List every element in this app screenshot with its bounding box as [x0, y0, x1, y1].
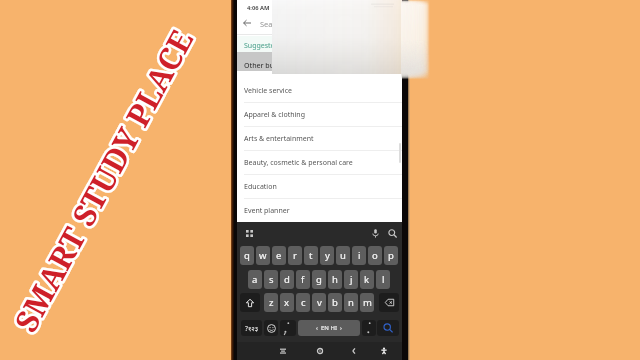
staticText: j	[350, 273, 353, 286]
button[interactable]: b	[328, 293, 342, 312]
staticText: p	[388, 249, 394, 262]
staticText: m	[363, 296, 372, 309]
button[interactable]: d	[280, 270, 294, 289]
button[interactable]: Vehicle service	[237, 78, 402, 102]
button[interactable]: a	[248, 270, 262, 289]
button[interactable]: q	[240, 246, 254, 265]
staticText: y	[325, 249, 330, 262]
button[interactable]: i	[352, 246, 366, 265]
button[interactable]: s	[264, 270, 278, 289]
button[interactable]: k	[360, 270, 374, 289]
button[interactable]: Home	[315, 346, 325, 356]
button[interactable]: c	[296, 293, 310, 312]
staticText: w	[259, 249, 267, 262]
staticText: Beauty, cosmetic & personal care	[244, 158, 353, 168]
button[interactable]: v	[312, 293, 326, 312]
button[interactable]	[362, 320, 376, 336]
button[interactable]: t	[304, 246, 318, 265]
button[interactable]: h	[328, 270, 342, 289]
staticText: v	[317, 296, 322, 309]
staticText: ‹ EN HI ›	[316, 324, 342, 332]
staticText: b	[332, 296, 338, 309]
button[interactable]: x	[280, 293, 294, 312]
staticText: g	[316, 273, 322, 286]
button[interactable]: w	[256, 246, 270, 265]
button[interactable]: o	[368, 246, 382, 265]
button[interactable]: ‹ EN HI ›	[298, 320, 360, 336]
button[interactable]: Arts & entertainment	[237, 126, 402, 150]
button[interactable]	[280, 320, 296, 336]
button[interactable]: j	[344, 270, 358, 289]
staticText: 4:06 AM	[247, 4, 270, 12]
button[interactable]: ?१२३	[241, 320, 262, 336]
staticText: r	[293, 249, 297, 262]
staticText: l	[382, 273, 385, 286]
button[interactable]: Other business	[237, 52, 402, 71]
staticText: u	[340, 249, 346, 262]
button[interactable]: Keyboard modes	[244, 228, 255, 239]
staticText: i	[358, 249, 361, 262]
staticText: Search	[260, 19, 284, 29]
staticText: k	[364, 273, 370, 286]
button[interactable]: Accessibility	[379, 346, 389, 356]
staticText: Event planner	[244, 206, 290, 216]
button[interactable]: z	[264, 293, 278, 312]
staticText: a	[252, 273, 258, 286]
staticText: ?१२३	[245, 324, 259, 333]
staticText: q	[244, 249, 250, 262]
staticText: Education	[244, 182, 277, 192]
button[interactable]: Back	[349, 346, 359, 356]
button[interactable]: e	[272, 246, 286, 265]
staticText: x	[284, 296, 290, 309]
staticText: f	[301, 273, 305, 286]
button[interactable]: g	[312, 270, 326, 289]
staticText: h	[332, 273, 338, 286]
staticText: Arts & entertainment	[244, 134, 314, 144]
staticText: s	[269, 273, 274, 286]
button[interactable]: f	[296, 270, 310, 289]
staticText: z	[269, 296, 274, 309]
button[interactable]: n	[344, 293, 358, 312]
button[interactable]: Voice input	[369, 227, 382, 240]
staticText: t	[309, 249, 313, 262]
staticText: Suggested	[244, 41, 279, 51]
button[interactable]: Search	[386, 227, 399, 240]
button[interactable]: Back	[238, 14, 256, 32]
staticText: c	[301, 296, 306, 309]
button[interactable]: Search	[377, 320, 399, 336]
staticText: n	[348, 296, 354, 309]
button[interactable]: Apparel & clothing	[237, 102, 402, 126]
button[interactable]: Recent apps	[278, 346, 288, 356]
button[interactable]: Event planner	[237, 198, 402, 222]
button[interactable]: r	[288, 246, 302, 265]
staticText: Vehicle service	[244, 86, 292, 96]
button[interactable]: Shift	[240, 293, 260, 312]
staticText: e	[276, 249, 282, 262]
button[interactable]: l	[376, 270, 390, 289]
staticText: Other business	[244, 61, 295, 71]
button[interactable]: Backspace	[379, 293, 399, 312]
staticText: Apparel & clothing	[244, 110, 305, 120]
staticText: o	[372, 249, 378, 262]
button[interactable]: u	[336, 246, 350, 265]
button[interactable]: Emoji	[264, 320, 278, 336]
staticText: d	[284, 273, 290, 286]
button[interactable]: y	[320, 246, 334, 265]
button[interactable]: Education	[237, 174, 402, 198]
button[interactable]: Beauty, cosmetic & personal care	[237, 150, 402, 174]
button[interactable]: m	[360, 293, 374, 312]
button[interactable]: p	[384, 246, 398, 265]
